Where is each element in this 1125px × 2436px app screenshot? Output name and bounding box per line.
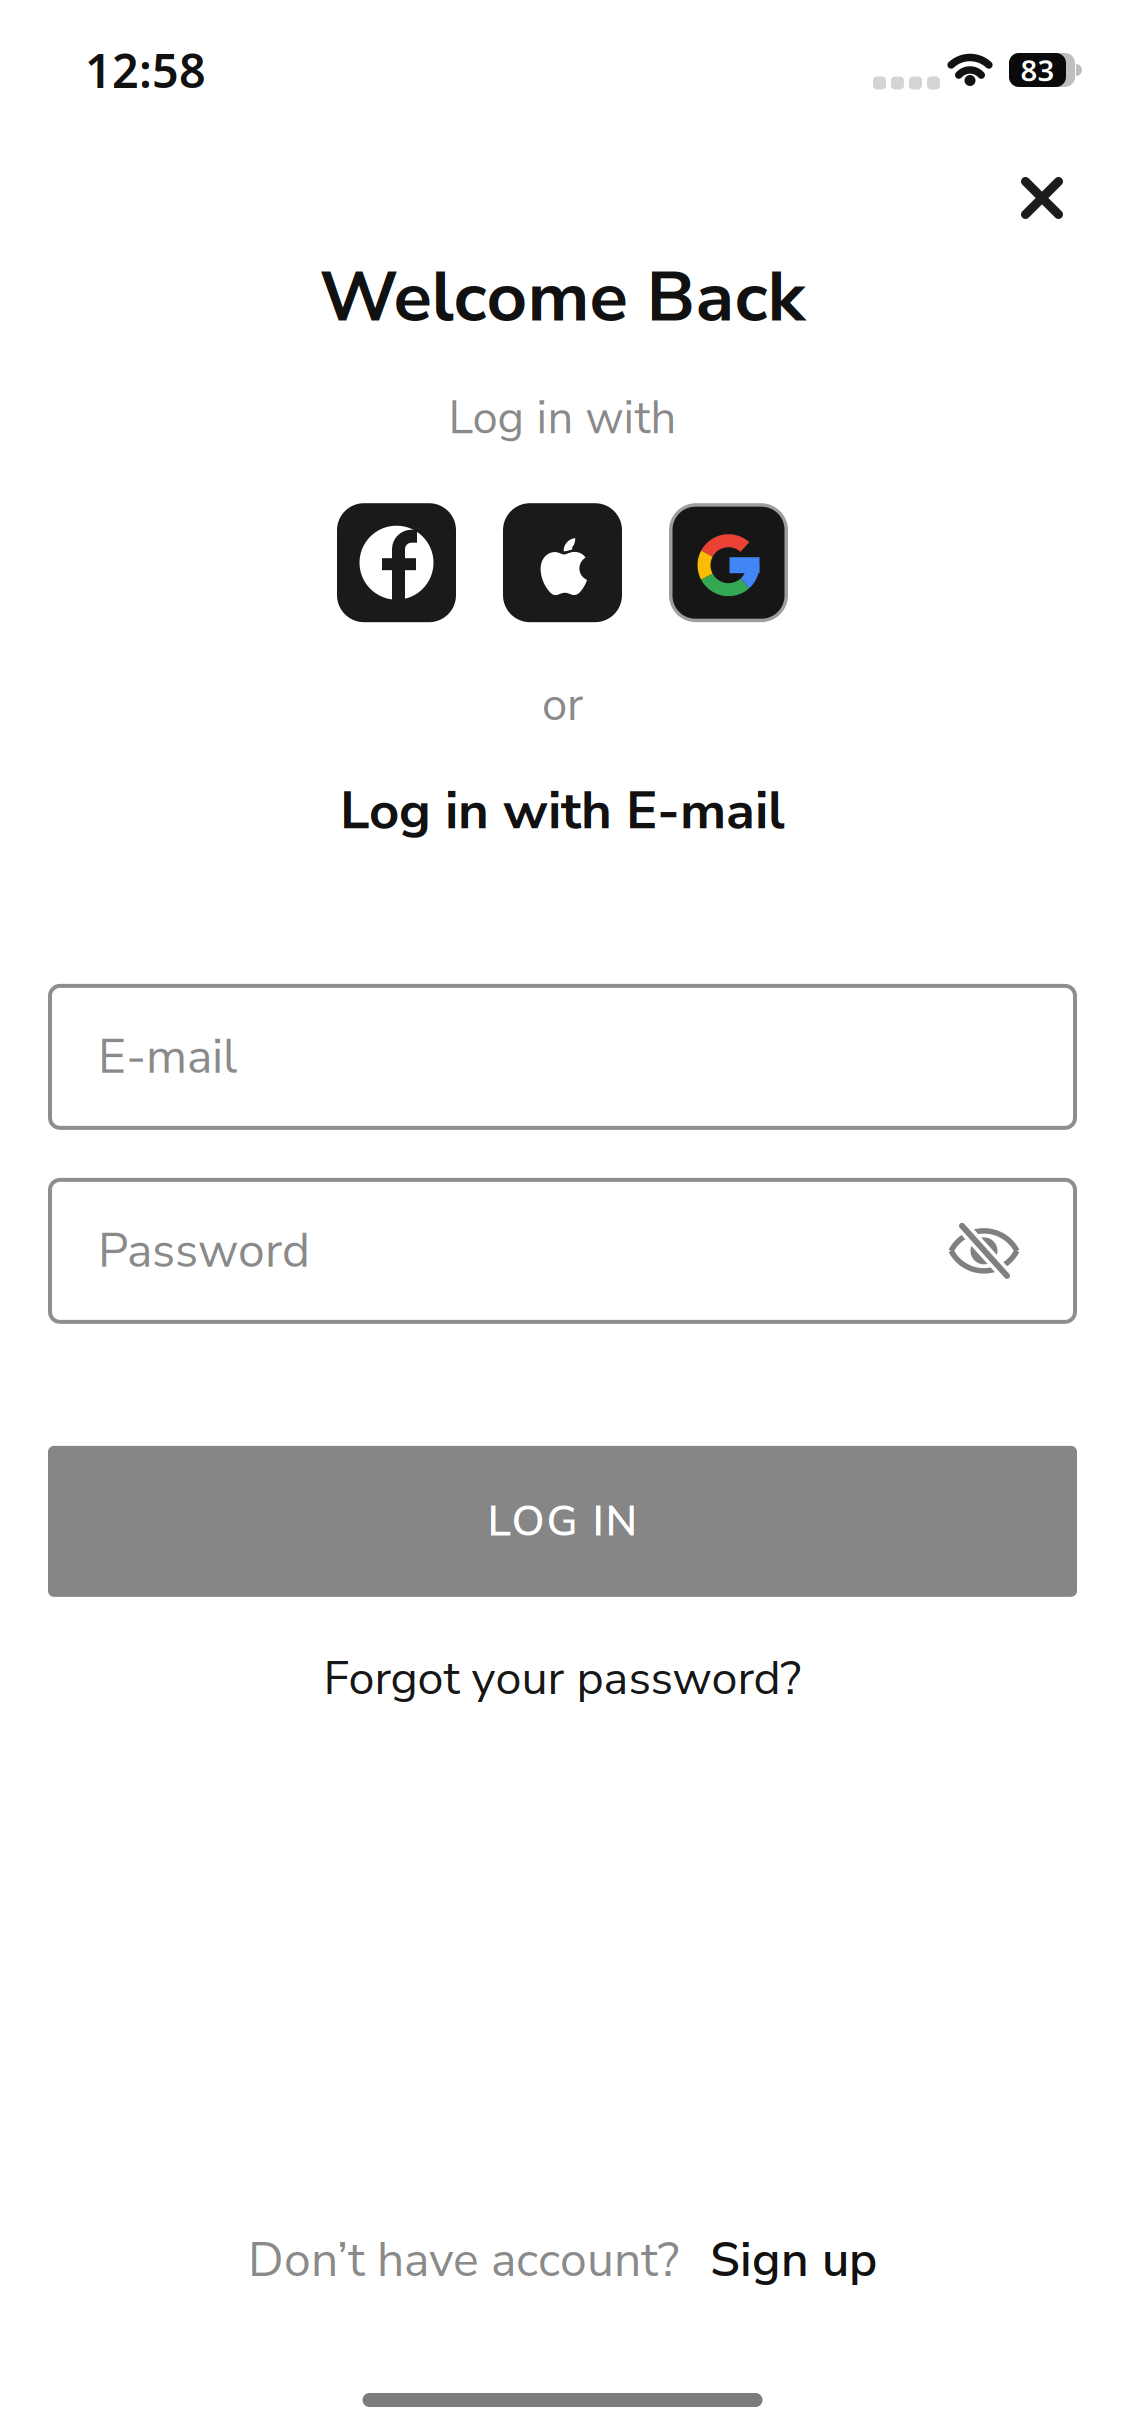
staticText: Forgot your password? xyxy=(323,1647,801,1711)
staticText: Log in with xyxy=(448,387,676,449)
button[interactable]: Close xyxy=(1021,177,1063,219)
button[interactable]: Log in with Facebook xyxy=(337,503,456,622)
staticText: 83 xyxy=(1020,50,1054,89)
staticText: LOG IN xyxy=(487,1492,637,1550)
button[interactable]: Sign up xyxy=(710,2227,877,2293)
button[interactable]: Show password xyxy=(949,1227,1019,1275)
staticText: Sign up xyxy=(710,2227,877,2293)
staticText: Password xyxy=(98,1218,310,1284)
staticText: Welcome Back xyxy=(319,249,805,345)
staticText: Log in with E-mail xyxy=(340,775,785,847)
staticText: or xyxy=(542,674,583,736)
staticText: 12:58 xyxy=(85,39,206,101)
button[interactable]: Log in with Apple xyxy=(503,503,622,622)
button[interactable]: Forgot your password? xyxy=(323,1647,801,1711)
button[interactable]: LOG IN xyxy=(48,1446,1077,1597)
staticText: Don’t have account? xyxy=(248,2227,679,2293)
button[interactable]: Log in with Google xyxy=(669,503,788,622)
staticText: E-mail xyxy=(98,1024,237,1090)
